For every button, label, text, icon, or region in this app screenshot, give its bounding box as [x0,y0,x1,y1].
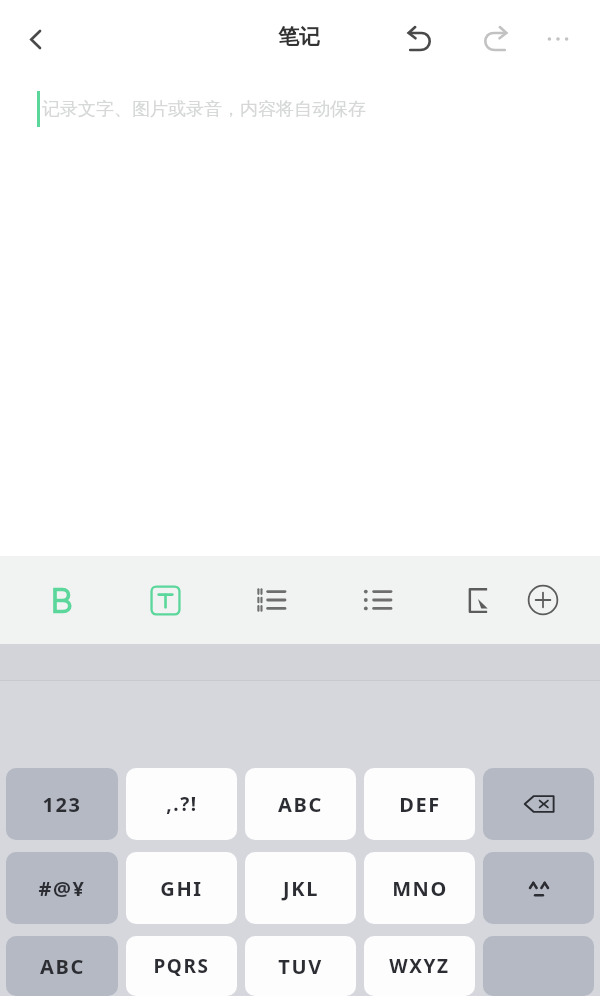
button[interactable]: ABC [6,936,118,996]
button[interactable]: TUV [245,936,356,996]
staticText: DEF [399,791,441,818]
button[interactable]: More options [530,11,586,67]
button[interactable]: 记录文字、图片或录音，内容将自动保存 [0,78,600,556]
staticText: ,.?! [166,791,198,817]
button[interactable]: 123 [6,768,118,840]
button[interactable]: #@¥ [6,852,118,924]
button[interactable]: MNO [364,852,475,924]
button[interactable]: DEF [364,768,475,840]
staticText: 笔记 [278,24,320,50]
button[interactable]: Text style [139,574,191,626]
button[interactable]: JKL [245,852,356,924]
staticText: JKL [283,875,319,902]
button[interactable]: ,.?! [126,768,237,840]
button[interactable]: Redo [466,10,524,68]
button[interactable]: PQRS [126,936,237,996]
staticText: ABC [278,791,323,818]
staticText: TUV [278,953,323,980]
button[interactable]: ABC [245,768,356,840]
button[interactable]: Bulleted list [351,574,403,626]
button[interactable]: Undo [390,10,448,68]
staticText: PQRS [153,953,210,979]
button[interactable]: Numbered list [245,574,297,626]
button[interactable]: Key [483,936,594,996]
staticText: ABC [40,953,85,980]
button[interactable]: Add attachment [517,574,569,626]
button[interactable]: WXYZ [364,936,475,996]
staticText: WXYZ [389,953,450,979]
staticText: #@¥ [38,875,86,902]
staticText: MNO [392,875,448,902]
staticText: 123 [42,791,82,818]
staticText: GHI [160,875,203,902]
button[interactable]: Handwriting [452,574,504,626]
button[interactable]: Back [6,10,64,68]
button[interactable]: Delete [483,768,594,840]
button[interactable]: Bold [34,574,86,626]
button[interactable]: Emoji [483,852,594,924]
button[interactable]: GHI [126,852,237,924]
staticText: 记录文字、图片或录音，内容将自动保存 [42,98,366,121]
